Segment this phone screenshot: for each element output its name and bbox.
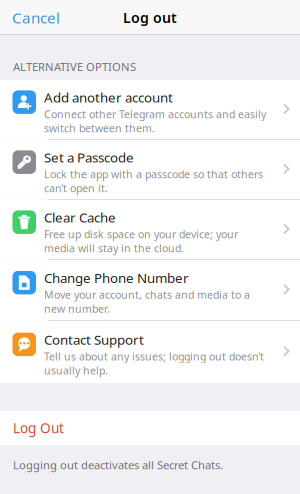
staticText: Connect other Telegram accounts and easi… <box>44 107 266 135</box>
staticText: Add another account <box>44 88 173 106</box>
staticText: Change Phone Number <box>44 269 189 287</box>
staticText: Log out <box>123 8 177 27</box>
staticText: Lock the app with a passcode so that oth… <box>44 167 263 195</box>
button[interactable]: Change Phone Number <box>0 260 300 320</box>
button[interactable]: Add another account <box>0 80 300 139</box>
staticText: Set a Passcode <box>44 148 134 166</box>
staticText: Logging out deactivates all Secret Chats… <box>13 458 223 472</box>
button[interactable]: Log Out <box>0 411 300 445</box>
staticText: Cancel <box>12 7 60 28</box>
button[interactable]: Set a Passcode <box>0 140 300 199</box>
staticText: Log Out <box>13 419 64 437</box>
staticText: Tell us about any issues; logging out do… <box>44 349 264 377</box>
button[interactable]: Cancel <box>0 0 70 35</box>
staticText: Clear Cache <box>44 208 116 226</box>
button[interactable]: Clear Cache <box>0 200 300 259</box>
staticText: Contact Support <box>44 331 144 348</box>
staticText: ALTERNATIVE OPTIONS <box>13 59 136 74</box>
staticText: Move your account, chats and media to a … <box>44 288 250 316</box>
staticText: Free up disk space on your device; your … <box>44 227 238 255</box>
button[interactable]: Contact Support <box>0 321 300 383</box>
